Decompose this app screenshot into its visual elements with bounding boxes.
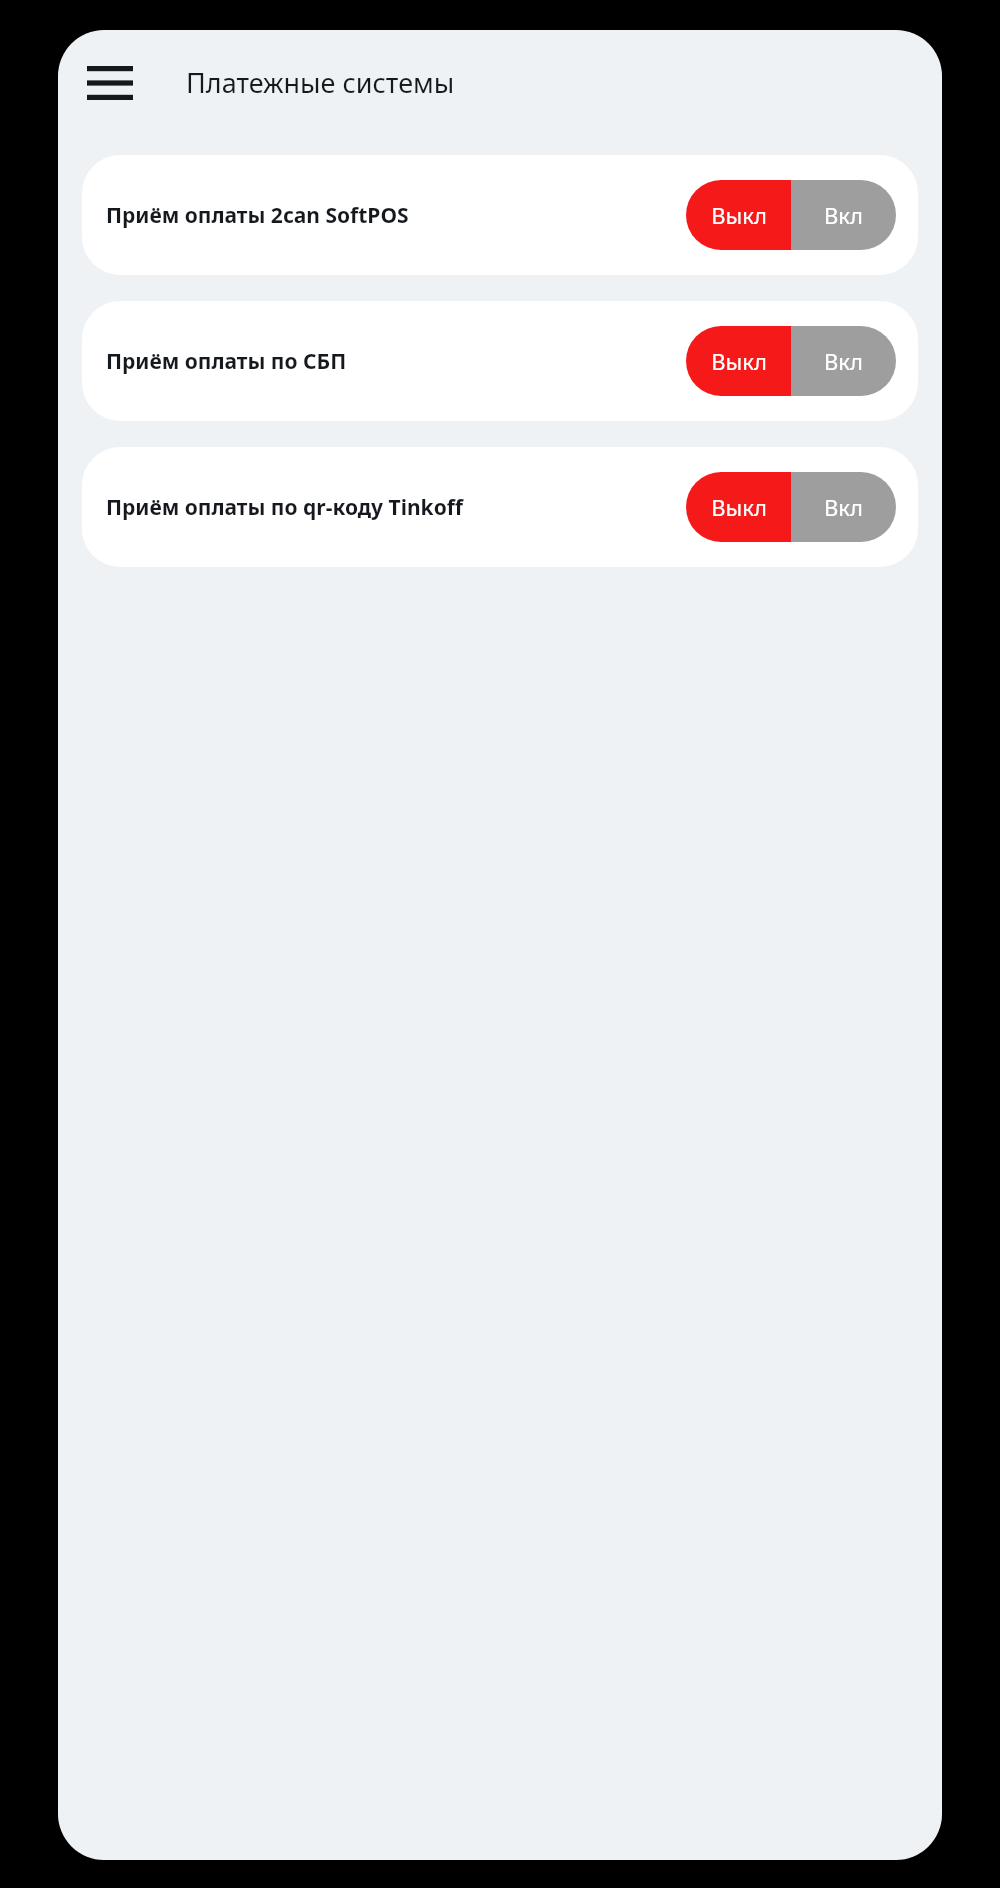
button[interactable]: Вкл xyxy=(791,180,896,250)
staticText: Выкл xyxy=(711,200,767,230)
staticText: Выкл xyxy=(711,492,767,522)
button[interactable]: Приём оплаты 2can SoftPOS xyxy=(82,155,918,275)
staticText: Приём оплаты 2can SoftPOS xyxy=(106,201,676,230)
staticText: Приём оплаты по СБП xyxy=(106,347,676,376)
staticText: Платежные системы xyxy=(186,64,455,101)
button[interactable]: Вкл xyxy=(791,472,896,542)
button[interactable]: Выкл xyxy=(686,180,791,250)
button[interactable]: Вкл xyxy=(791,326,896,396)
button[interactable]: Приём оплаты по qr-коду Tinkoff xyxy=(82,447,918,567)
staticText: Вкл xyxy=(824,492,863,522)
staticText: Выкл xyxy=(711,346,767,376)
staticText: Вкл xyxy=(824,200,863,230)
button[interactable]: Выкл xyxy=(686,326,791,396)
button[interactable]: Menu xyxy=(78,51,142,115)
staticText: Вкл xyxy=(824,346,863,376)
button[interactable]: Приём оплаты по СБП xyxy=(82,301,918,421)
staticText: Приём оплаты по qr-коду Tinkoff xyxy=(106,493,676,522)
button[interactable]: Выкл xyxy=(686,472,791,542)
